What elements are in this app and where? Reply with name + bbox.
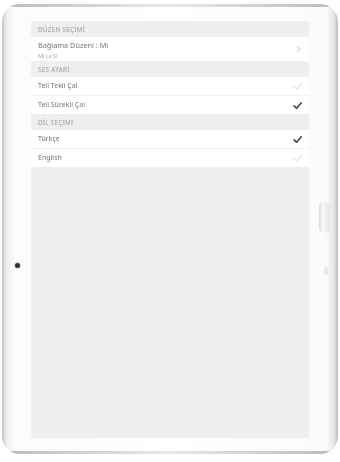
staticText: Teli Sürekli Çal: [38, 100, 293, 110]
other: Selected: [293, 135, 302, 144]
staticText: SAMSUNG: [28, 192, 36, 229]
other: Selected: [293, 101, 302, 110]
staticText: SES AYARI: [38, 65, 70, 73]
staticText: Türkçe: [38, 134, 293, 144]
button[interactable]: English: [31, 149, 309, 167]
button[interactable]: Teli Tekli Çal: [31, 77, 309, 95]
staticText: DÜZEN SEÇİMİ: [38, 25, 86, 33]
staticText: Mi La Si: [38, 52, 58, 59]
other: Not selected: [293, 154, 302, 163]
button[interactable]: Türkçe: [31, 130, 309, 148]
staticText: Bağlama Düzeni : Mi: [38, 40, 109, 50]
staticText: English: [38, 153, 293, 163]
staticText: DİL SEÇİMİ: [38, 118, 74, 126]
button[interactable]: Bağlama Düzeni : Mi: [31, 37, 309, 61]
staticText: Teli Tekli Çal: [38, 81, 293, 91]
other: Not selected: [293, 82, 302, 91]
button[interactable]: Teli Sürekli Çal: [31, 96, 309, 114]
other: Power button: [319, 201, 330, 233]
